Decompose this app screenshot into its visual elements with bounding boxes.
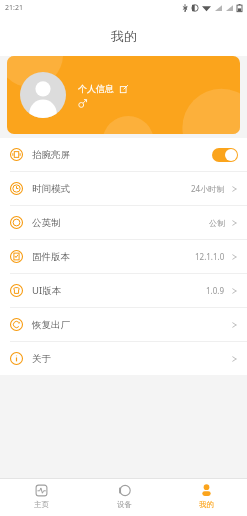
button[interactable]: 公英制 [0, 206, 247, 239]
staticText: 公英制 [32, 217, 61, 229]
staticText: 21:21 [5, 3, 23, 13]
button[interactable]: 关于 [0, 342, 247, 375]
other: 我的 [199, 483, 214, 498]
staticText: 抬腕亮屏 [32, 149, 70, 161]
staticText: 12.1.1.0 [195, 251, 225, 262]
button[interactable]: 抬腕亮屏 [0, 138, 247, 171]
button[interactable]: 设备 [83, 479, 165, 509]
other: 主页 [34, 483, 49, 498]
staticText: 1.0.9 [206, 285, 225, 296]
button[interactable]: 抬腕亮屏开关 [212, 148, 238, 162]
staticText: 主页 [34, 500, 49, 509]
button[interactable]: 我的 [165, 479, 247, 509]
button[interactable]: 恢复出厂 [0, 308, 247, 341]
staticText: 我的 [111, 28, 137, 44]
staticText: 关于 [32, 353, 51, 365]
staticText: 设备 [117, 500, 132, 509]
staticText: 我的 [199, 500, 214, 509]
staticText: 24小时制 [191, 183, 225, 194]
staticText: 个人信息 [78, 83, 114, 94]
button[interactable]: 主页 [0, 479, 83, 509]
button[interactable]: 个人信息 [7, 56, 240, 134]
staticText: UI版本 [32, 284, 62, 297]
staticText: 公制 [209, 218, 225, 228]
staticText: 时间模式 [32, 183, 70, 195]
staticText: 恢复出厂 [32, 319, 70, 331]
button[interactable]: UI版本 [0, 274, 247, 307]
button[interactable]: 时间模式 [0, 172, 247, 205]
staticText: 固件版本 [32, 251, 70, 263]
other: 设备 [117, 483, 132, 498]
button[interactable]: 固件版本 [0, 240, 247, 273]
